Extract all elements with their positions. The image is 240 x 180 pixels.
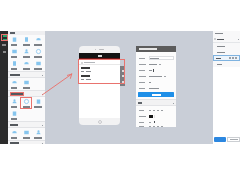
button[interactable] — [8, 122, 45, 127]
button[interactable] — [214, 36, 239, 42]
button[interactable]: Tool — [1, 34, 8, 41]
button[interactable] — [8, 141, 45, 144]
button[interactable] — [227, 137, 240, 142]
button[interactable] — [217, 49, 240, 55]
button[interactable] — [8, 72, 45, 77]
button[interactable] — [81, 67, 120, 72]
button[interactable]: Component — [20, 128, 32, 140]
button[interactable] — [149, 56, 174, 60]
button[interactable]: Component — [20, 47, 32, 59]
button[interactable]: Component — [8, 128, 20, 140]
button[interactable]: Component — [8, 78, 20, 90]
button[interactable]: Component — [20, 97, 32, 109]
button[interactable] — [217, 43, 240, 49]
button[interactable]: Component — [8, 35, 20, 47]
button[interactable]: Component — [8, 59, 20, 71]
button[interactable]: Component — [32, 35, 44, 47]
button[interactable] — [138, 92, 174, 97]
button[interactable]: Component — [8, 109, 20, 121]
button[interactable]: Component — [32, 59, 44, 71]
button[interactable]: Component — [32, 97, 44, 109]
button[interactable]: Component — [32, 47, 44, 59]
button[interactable]: Component — [20, 35, 32, 47]
button[interactable]: Preview — [214, 137, 226, 142]
button[interactable]: Component — [8, 97, 20, 109]
button[interactable]: Component — [8, 47, 20, 59]
button[interactable] — [8, 91, 45, 96]
button[interactable]: Component — [32, 128, 44, 140]
button[interactable] — [136, 100, 176, 105]
button[interactable] — [213, 55, 240, 61]
button[interactable] — [81, 75, 120, 80]
button[interactable]: Component — [20, 59, 32, 71]
button[interactable] — [217, 61, 240, 67]
button[interactable]: Component — [20, 78, 32, 90]
